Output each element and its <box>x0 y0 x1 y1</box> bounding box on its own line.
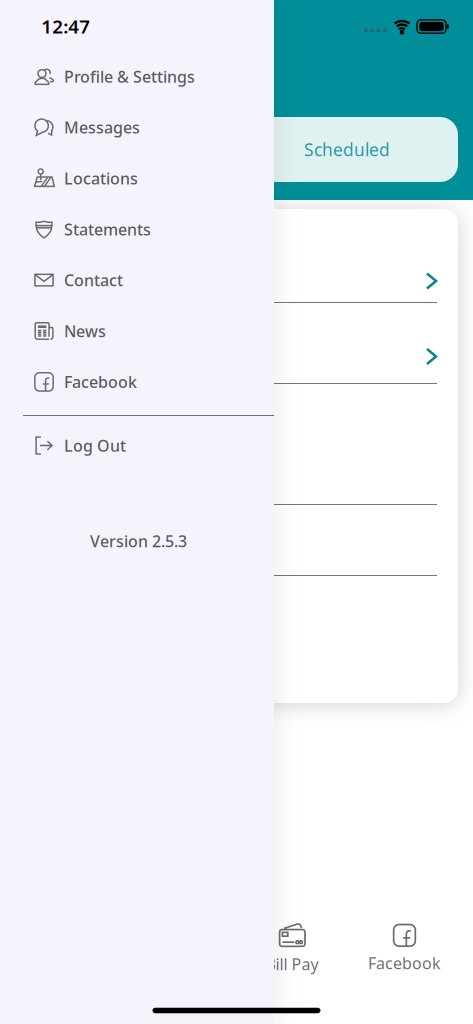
button[interactable]: Contact <box>0 256 274 304</box>
staticText: News <box>64 320 106 342</box>
staticText: Version 2.5.3 <box>90 530 187 552</box>
button[interactable]: Facebook <box>0 358 274 406</box>
button[interactable]: Messages <box>0 103 274 151</box>
staticText: Profile & Settings <box>64 66 195 87</box>
button[interactable]: Log Out <box>0 421 274 469</box>
staticText: Facebook <box>64 371 137 392</box>
button[interactable]: Scheduled <box>236 117 457 182</box>
staticText: Log Out <box>64 435 126 456</box>
staticText: Messages <box>64 117 140 138</box>
button[interactable]: Scheduled payment details <box>15 302 458 382</box>
staticText: Facebook <box>368 952 441 974</box>
staticText: Bill Pay <box>265 953 318 975</box>
button[interactable]: Bill Pay <box>236 921 348 975</box>
button[interactable]: Facebook <box>348 921 460 975</box>
staticText: 12:47 <box>41 14 90 39</box>
button[interactable]: News <box>0 307 274 355</box>
staticText: Locations <box>64 168 138 189</box>
staticText: Scheduled <box>304 138 390 161</box>
button[interactable]: Profile & Settings <box>0 52 274 100</box>
button[interactable]: Scheduled payment details <box>15 209 458 301</box>
staticText: Statements <box>64 219 151 240</box>
button[interactable]: Locations <box>0 154 274 202</box>
staticText: Contact <box>64 269 123 291</box>
button[interactable]: Statements <box>0 205 274 253</box>
